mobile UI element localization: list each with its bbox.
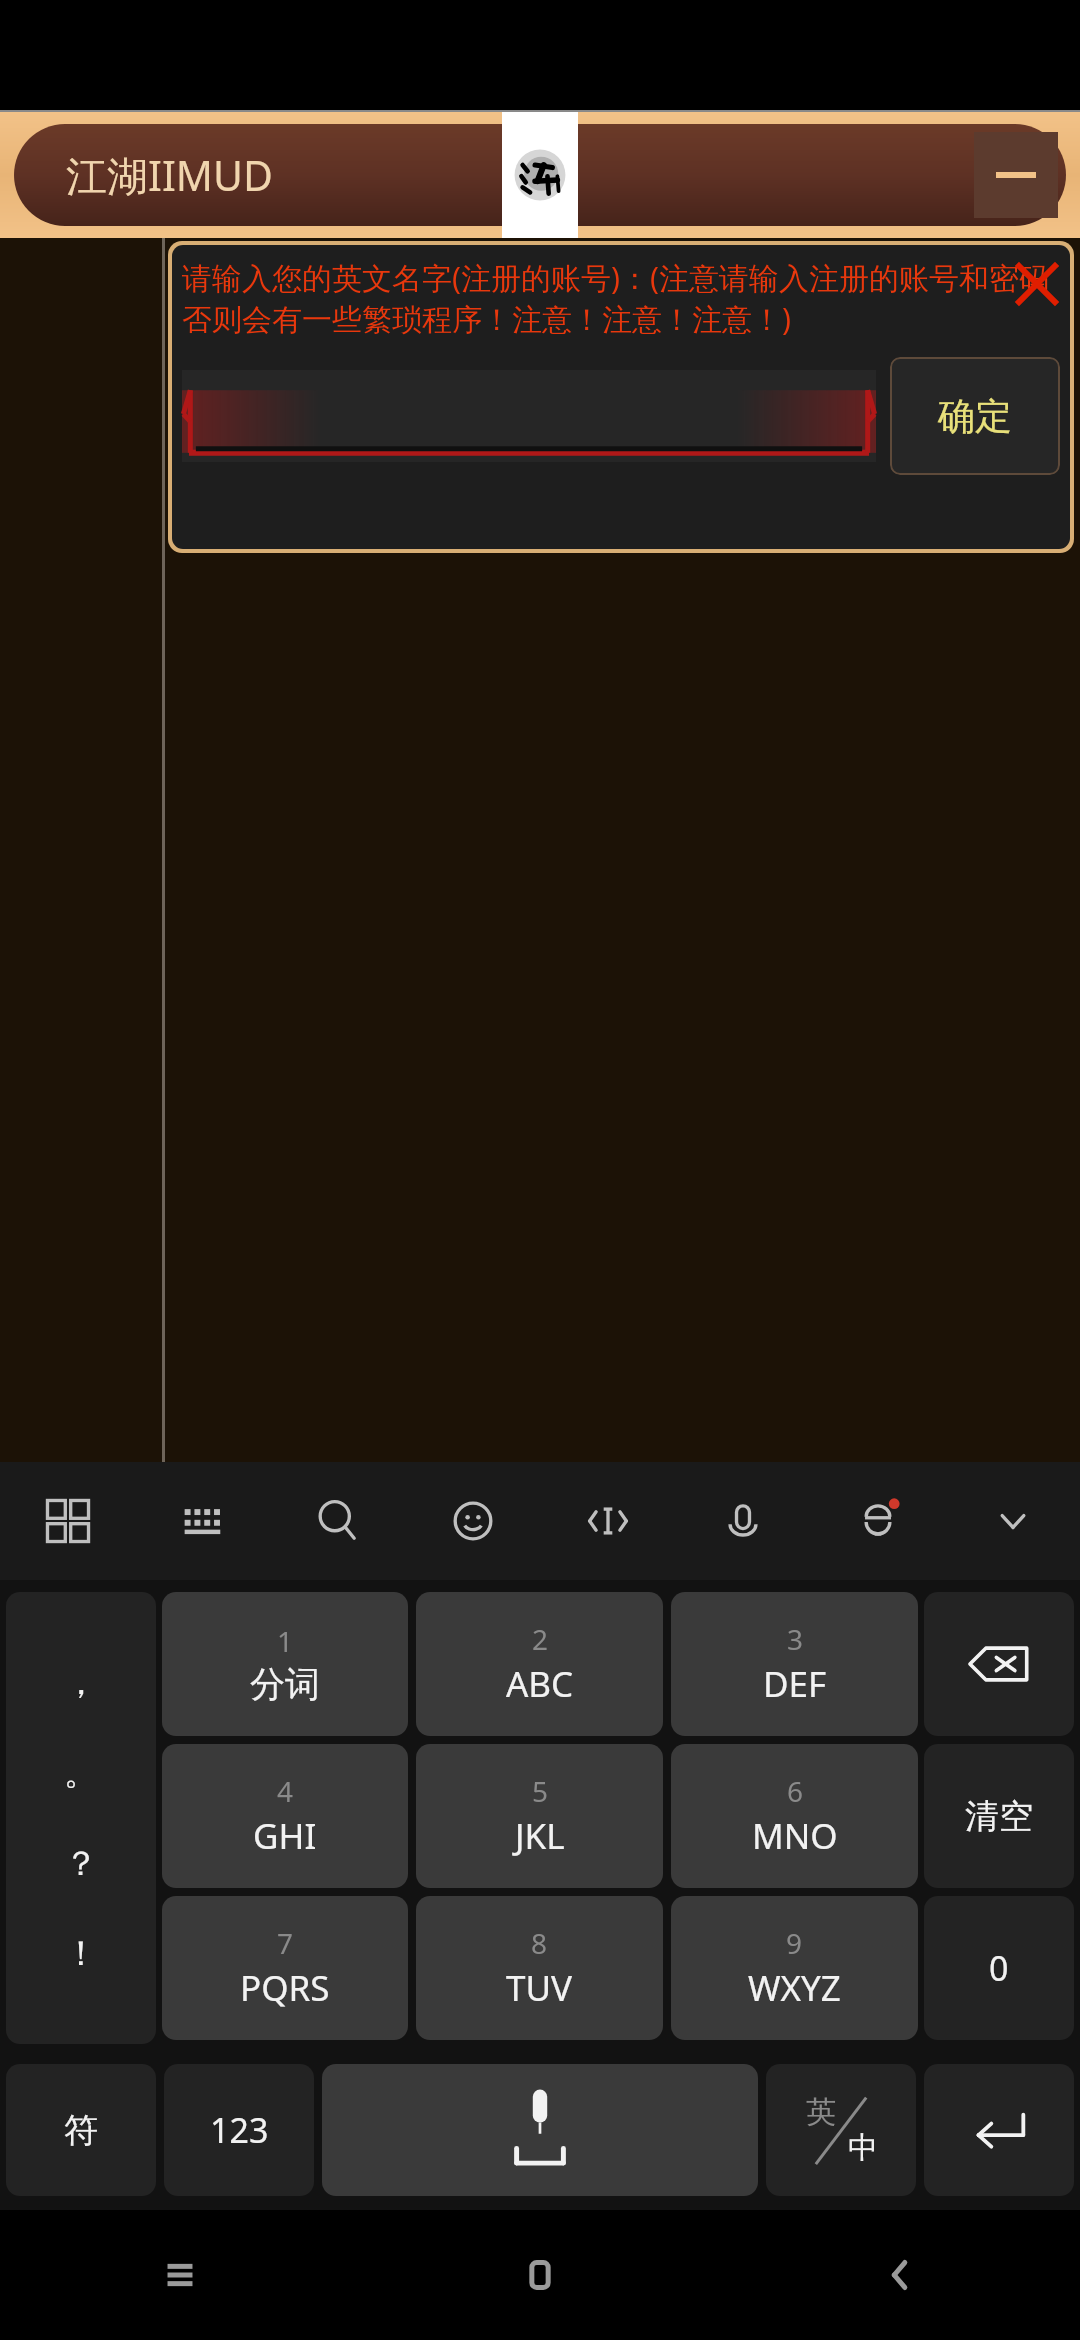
staticText: TUV: [506, 1964, 573, 2012]
staticText: 0: [989, 1945, 1009, 1991]
button[interactable]: ，: [6, 1592, 156, 2044]
staticText: MNO: [752, 1812, 838, 1860]
staticText: 清空: [965, 1795, 1033, 1838]
button[interactable]: Keyboard: [135, 1462, 270, 1580]
button[interactable]: 5: [416, 1744, 663, 1888]
staticText: 2: [532, 1620, 549, 1658]
button[interactable]: Apps: [0, 1462, 135, 1580]
staticText: 。: [64, 1751, 98, 1794]
staticText: 5: [532, 1772, 549, 1810]
button[interactable]: Enter: [924, 2064, 1074, 2196]
staticText: 请输入您的英文名字(注册的账号)：(注意请输入注册的账号和密码否则会有一些繁琐程…: [182, 257, 1064, 339]
other: Backspace: [966, 1631, 1032, 1697]
staticText: 7: [277, 1924, 294, 1962]
staticText: 1: [277, 1622, 294, 1660]
staticText: 中: [848, 2129, 878, 2167]
staticText: 8: [531, 1924, 548, 1962]
button[interactable]: Search: [270, 1462, 405, 1580]
staticText: 确定: [938, 393, 1012, 440]
staticText: JKL: [515, 1812, 565, 1860]
button[interactable]: Switch language: [766, 2064, 916, 2196]
button[interactable]: Back: [720, 2210, 1080, 2340]
staticText: GHI: [253, 1812, 317, 1860]
button[interactable]: Minimize: [974, 132, 1058, 218]
other: Space: [495, 2084, 585, 2176]
button[interactable]: 1: [162, 1592, 408, 1736]
staticText: ？: [64, 1842, 98, 1885]
button[interactable]: Hide: [945, 1462, 1080, 1580]
staticText: 分词: [250, 1662, 320, 1706]
staticText: ！: [64, 1932, 98, 1975]
staticText: 123: [210, 2107, 269, 2153]
other: Switch language: [796, 2085, 886, 2175]
button[interactable]: 123: [164, 2064, 314, 2196]
staticText: 符: [64, 2109, 98, 2152]
button[interactable]: 确定: [890, 357, 1060, 475]
staticText: 英: [806, 2093, 836, 2131]
button[interactable]: Backspace: [924, 1592, 1074, 1736]
button[interactable]: 清空: [924, 1744, 1074, 1888]
button[interactable]: 4: [162, 1744, 408, 1888]
staticText: ，: [64, 1661, 98, 1704]
button[interactable]: 9: [671, 1896, 918, 2040]
button[interactable]: Space: [322, 2064, 758, 2196]
button[interactable]: 符: [6, 2064, 156, 2196]
button[interactable]: Theme: [810, 1462, 945, 1580]
button[interactable]: Voice: [675, 1462, 810, 1580]
button[interactable]: 0: [924, 1896, 1074, 2040]
button[interactable]: 3: [671, 1592, 918, 1736]
button[interactable]: Home: [360, 2210, 720, 2340]
staticText: DEF: [763, 1660, 827, 1708]
staticText: 江湖IIMUD: [66, 147, 273, 203]
staticText: 3: [787, 1620, 804, 1658]
button[interactable]: 7: [162, 1896, 408, 2040]
staticText: WXYZ: [748, 1964, 841, 2012]
staticText: 9: [786, 1924, 803, 1962]
button[interactable]: [182, 370, 876, 462]
button[interactable]: Clipboard: [540, 1462, 675, 1580]
button[interactable]: Recents: [0, 2210, 360, 2340]
button[interactable]: 2: [416, 1592, 663, 1736]
staticText: 6: [787, 1772, 804, 1810]
staticText: PQRS: [240, 1964, 330, 2012]
staticText: ABC: [506, 1660, 574, 1708]
staticText: 4: [277, 1772, 294, 1810]
button[interactable]: Emoji: [405, 1462, 540, 1580]
button[interactable]: 8: [416, 1896, 663, 2040]
button[interactable]: 6: [671, 1744, 918, 1888]
other: Enter: [967, 2098, 1031, 2162]
button[interactable]: Close: [1010, 257, 1064, 311]
